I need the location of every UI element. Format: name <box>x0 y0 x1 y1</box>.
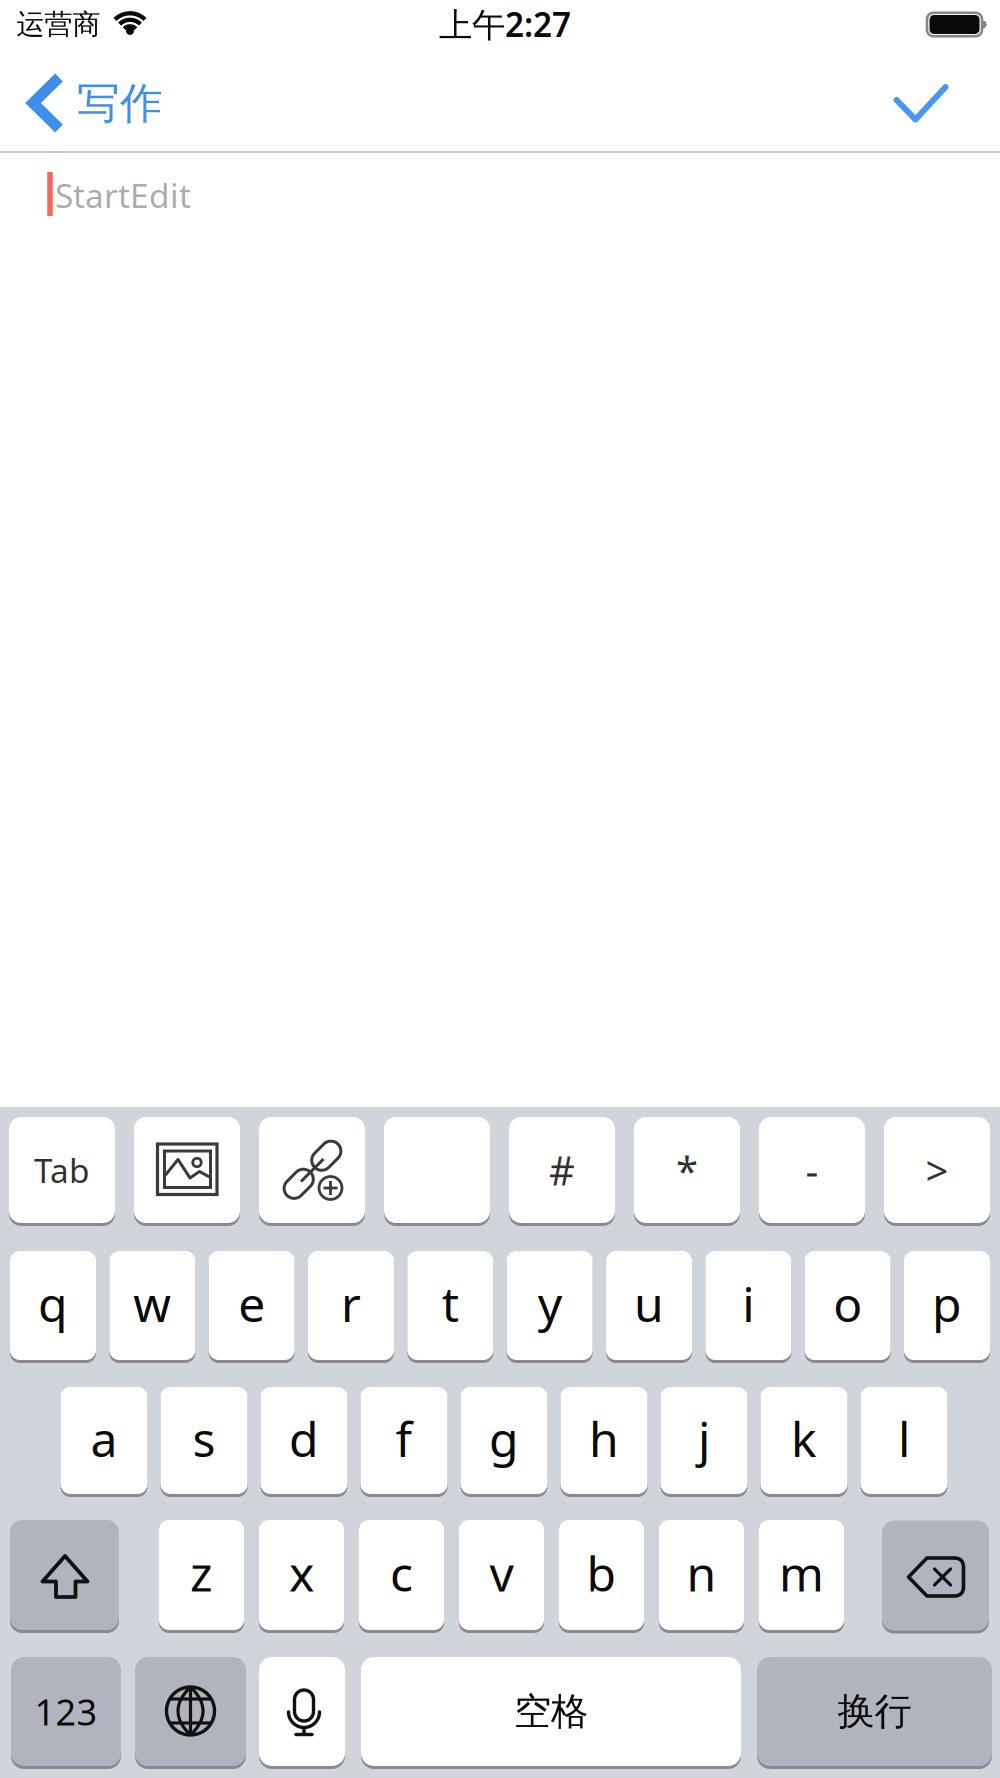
staticText: - <box>805 1143 818 1196</box>
button[interactable] <box>259 1117 365 1223</box>
staticText: k <box>791 1407 817 1470</box>
button[interactable]: e <box>209 1251 295 1360</box>
button[interactable]: h <box>560 1387 647 1494</box>
staticText: 上午2:27 <box>439 2 571 46</box>
staticText: 空格 <box>514 1689 588 1734</box>
staticText: b <box>586 1541 616 1605</box>
button[interactable]: u <box>606 1251 692 1360</box>
staticText: a <box>90 1407 117 1470</box>
button[interactable]: i <box>705 1251 791 1360</box>
staticText: v <box>489 1541 513 1605</box>
button[interactable]: b <box>559 1520 644 1630</box>
button[interactable]: x <box>259 1520 344 1630</box>
staticText: j <box>698 1407 710 1470</box>
button[interactable] <box>882 1520 989 1630</box>
staticText: i <box>742 1272 754 1335</box>
button[interactable]: - <box>759 1117 865 1223</box>
staticText: u <box>634 1272 664 1335</box>
button[interactable]: 123 <box>11 1657 121 1766</box>
staticText: d <box>289 1407 319 1470</box>
staticText: o <box>833 1272 862 1335</box>
staticText: > <box>925 1143 948 1196</box>
staticText: Tab <box>34 1148 90 1192</box>
button[interactable] <box>894 84 948 122</box>
staticText: # <box>549 1143 575 1196</box>
staticText: c <box>390 1541 413 1605</box>
staticText: 换行 <box>837 1689 911 1734</box>
button[interactable]: Tab <box>9 1117 115 1223</box>
staticText: r <box>341 1272 361 1335</box>
staticText: w <box>133 1272 171 1335</box>
staticText: h <box>589 1407 619 1470</box>
button[interactable]: t <box>407 1251 493 1360</box>
button[interactable]: j <box>660 1387 747 1494</box>
staticText: l <box>898 1407 910 1470</box>
staticText: s <box>192 1407 215 1470</box>
staticText: 运营商 <box>16 7 100 42</box>
staticText: f <box>395 1407 412 1470</box>
button[interactable]: c <box>359 1520 444 1630</box>
button[interactable]: > <box>884 1117 990 1223</box>
button[interactable]: v <box>459 1520 544 1630</box>
button[interactable] <box>384 1117 490 1223</box>
staticText: t <box>442 1272 459 1335</box>
button[interactable]: k <box>760 1387 847 1494</box>
button[interactable]: q <box>10 1251 96 1360</box>
button[interactable]: # <box>509 1117 615 1223</box>
button[interactable]: 换行 <box>757 1657 992 1766</box>
staticText: z <box>190 1541 213 1605</box>
button[interactable]: 写作 <box>30 73 163 133</box>
button[interactable] <box>259 1657 345 1766</box>
button[interactable]: p <box>904 1251 990 1360</box>
staticText: x <box>289 1541 314 1605</box>
staticText: StartEdit <box>55 173 191 217</box>
button[interactable] <box>10 1520 119 1630</box>
button[interactable]: n <box>659 1520 744 1630</box>
staticText: p <box>932 1272 962 1335</box>
staticText: * <box>676 1143 698 1196</box>
button[interactable]: d <box>260 1387 347 1494</box>
button[interactable]: z <box>159 1520 244 1630</box>
staticText: q <box>38 1272 68 1335</box>
button[interactable]: s <box>160 1387 247 1494</box>
button[interactable] <box>134 1117 240 1223</box>
button[interactable]: r <box>308 1251 394 1360</box>
button[interactable]: l <box>860 1387 947 1494</box>
button[interactable]: m <box>759 1520 844 1630</box>
button[interactable]: 空格 <box>361 1657 741 1766</box>
button[interactable]: g <box>460 1387 547 1494</box>
button[interactable]: w <box>109 1251 195 1360</box>
button[interactable]: y <box>507 1251 593 1360</box>
button[interactable]: o <box>805 1251 891 1360</box>
button[interactable]: a <box>60 1387 147 1494</box>
button[interactable] <box>135 1657 246 1766</box>
staticText: 写作 <box>77 77 163 130</box>
staticText: n <box>686 1541 716 1605</box>
staticText: e <box>238 1272 265 1335</box>
staticText: g <box>489 1407 519 1470</box>
staticText: y <box>538 1272 562 1335</box>
button[interactable]: * <box>634 1117 740 1223</box>
staticText: m <box>779 1541 824 1605</box>
staticText: 123 <box>34 1688 97 1735</box>
button[interactable]: f <box>360 1387 447 1494</box>
